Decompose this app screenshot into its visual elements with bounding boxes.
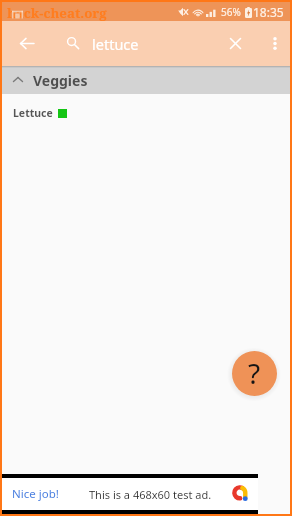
staticText: Lettuce: [13, 106, 53, 120]
staticText: 56%: [221, 5, 241, 19]
button[interactable]: More options: [264, 21, 286, 66]
staticText: hack-cheat.org: [7, 4, 107, 22]
button[interactable]: Lettuce: [2, 94, 290, 132]
button[interactable]: Nice job!: [2, 478, 258, 510]
button[interactable]: Help: [232, 351, 277, 396]
staticText: lettuce: [92, 34, 139, 54]
staticText: 18:35: [253, 4, 284, 20]
staticText: ?: [248, 354, 261, 392]
button[interactable]: [2, 66, 290, 94]
button[interactable]: Back: [6, 21, 48, 66]
button[interactable]: Clear search: [223, 21, 247, 66]
staticText: Veggies: [33, 71, 88, 90]
staticText: Nice job!: [12, 486, 59, 502]
staticText: This is a 468x60 test ad.: [89, 487, 212, 502]
